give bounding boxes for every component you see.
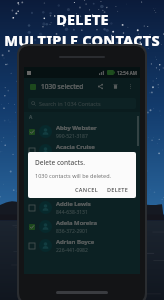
staticText: CANCEL: [75, 186, 98, 193]
button[interactable]: Addie Lewis: [24, 198, 140, 217]
button[interactable]: Delete: [110, 81, 121, 92]
button[interactable]: Ada Bergman: [24, 160, 140, 179]
button[interactable]: Adela Moreira: [24, 217, 140, 236]
button[interactable]: Select all: [28, 82, 37, 91]
staticText: 990-521-3187: [56, 133, 88, 140]
staticText: Addie Lewis: [56, 200, 91, 208]
staticText: 844-638-3131: [56, 209, 88, 216]
button[interactable]: DELETE: [105, 184, 131, 195]
button[interactable]: Search in 1034 Contacts: [28, 98, 136, 109]
button[interactable]: Acacia Cruise: [24, 141, 140, 160]
staticText: 574-061-5500: [56, 190, 88, 197]
staticText: Adrian Boyce: [56, 238, 95, 246]
button[interactable]: Adrian Boyce: [24, 236, 140, 255]
button[interactable]: More options: [125, 81, 136, 92]
staticText: Delete contacts.: [35, 158, 85, 167]
staticText: Acacia Cruise: [56, 143, 95, 151]
staticText: Ada Bergman: [56, 162, 96, 170]
staticText: 1030 selected: [41, 82, 84, 91]
staticText: 836-372-2901: [56, 228, 88, 235]
staticText: MULTIPLE CONTACTS: [4, 30, 160, 50]
staticText: 1030 contacts will be deleted.: [35, 172, 112, 179]
button[interactable]: CANCEL: [73, 184, 100, 195]
staticText: Addie Shields: [56, 181, 96, 189]
staticText: Search in 1034 Contacts: [39, 100, 101, 107]
button[interactable]: Share: [95, 81, 106, 92]
staticText: A: [29, 114, 33, 121]
staticText: 336-112-9045: [56, 171, 88, 178]
staticText: 12:54 AM: [117, 70, 137, 76]
button[interactable]: Addie Shields: [24, 179, 140, 198]
staticText: Abby Webster: [56, 124, 97, 132]
button[interactable]: Abby Webster: [24, 122, 140, 141]
staticText: DELETE: [107, 186, 129, 193]
staticText: DELETE: [56, 9, 109, 29]
staticText: 226-441-0982: [56, 247, 88, 254]
staticText: Adela Moreira: [56, 219, 98, 227]
